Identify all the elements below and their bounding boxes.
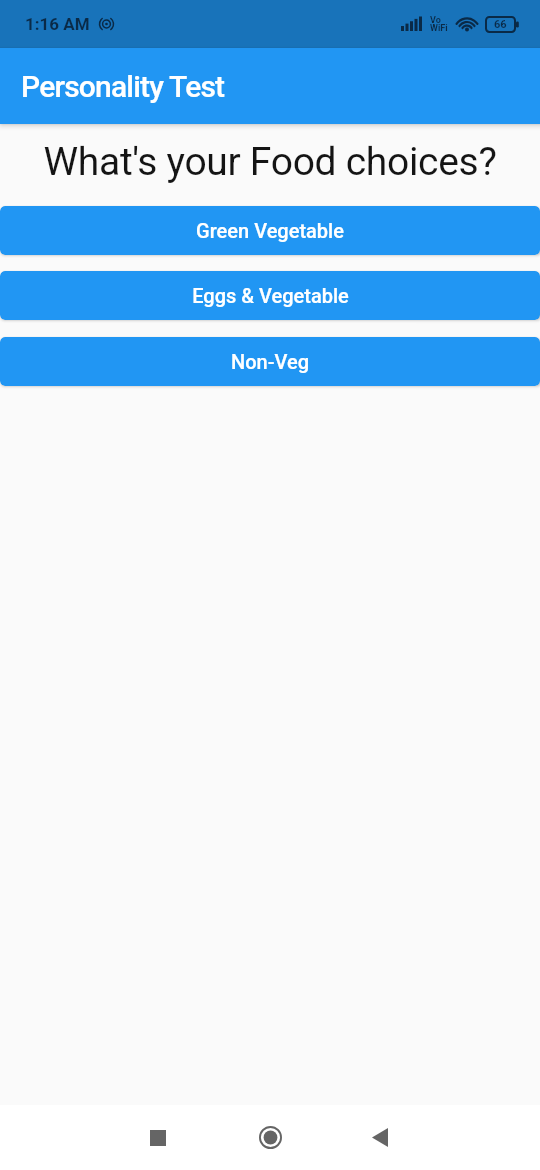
button[interactable]: Non-Veg [0, 337, 540, 386]
button[interactable]: Home [242, 1105, 298, 1170]
staticText: 1:16 AM [25, 14, 90, 34]
button[interactable]: Back [352, 1105, 408, 1170]
staticText: What's your Food choices? [0, 139, 540, 185]
button[interactable]: Eggs & Vegetable [0, 271, 540, 320]
staticText: 66 [494, 18, 507, 31]
staticText: WiFi [430, 23, 448, 34]
staticText: Green Vegetable [196, 219, 344, 242]
staticText: Vo [430, 15, 441, 26]
button[interactable]: Recent apps [130, 1105, 186, 1170]
staticText: Eggs & Vegetable [192, 284, 349, 307]
staticText: Non-Veg [231, 350, 309, 373]
staticText: Personality Test [21, 69, 225, 104]
button[interactable]: Green Vegetable [0, 206, 540, 255]
